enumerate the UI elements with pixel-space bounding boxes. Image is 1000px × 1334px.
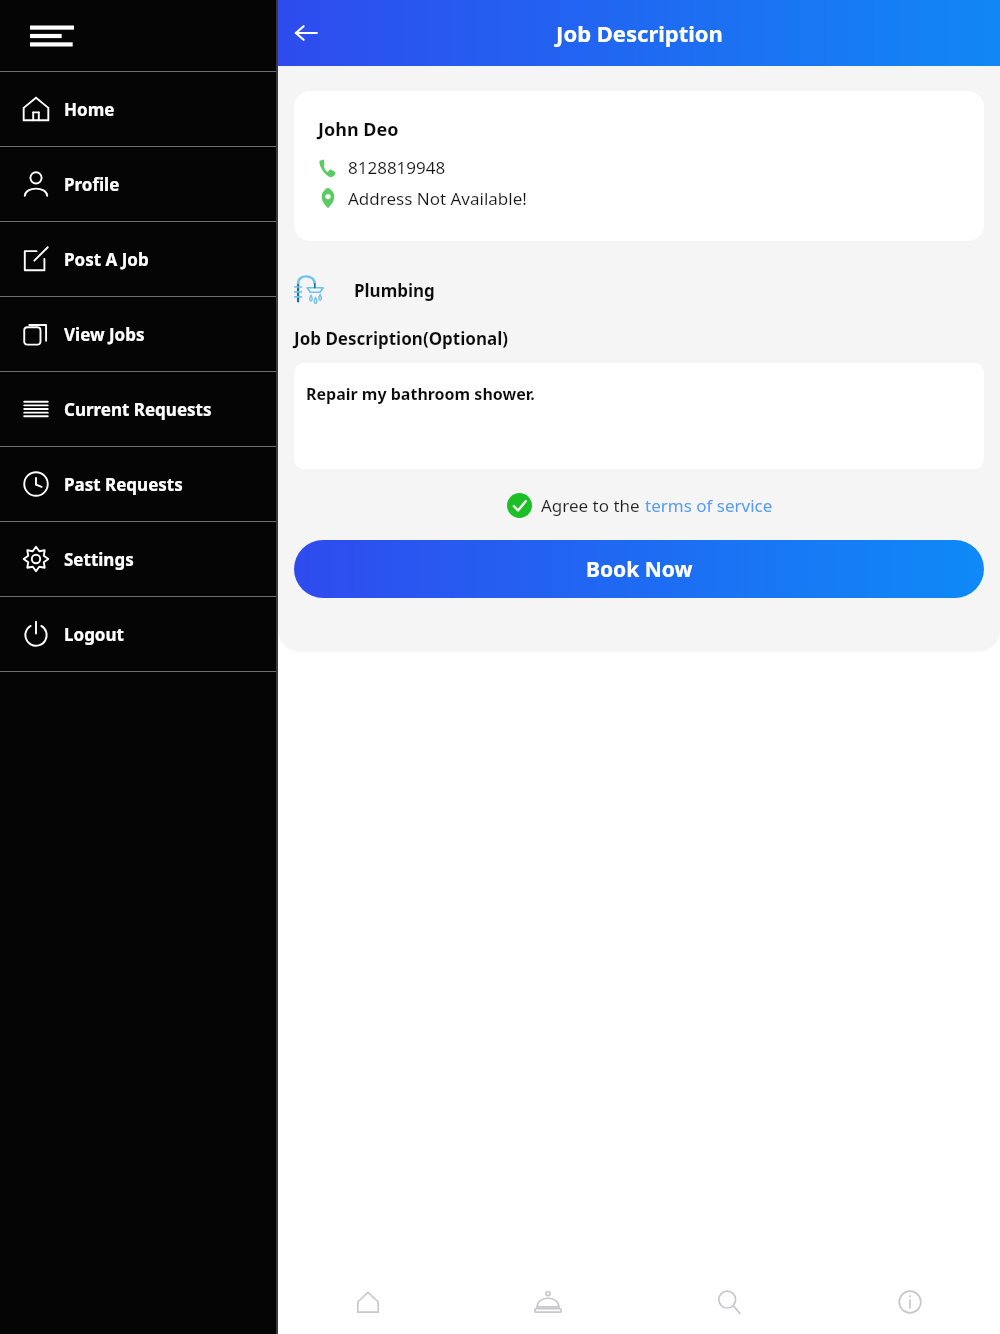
- staticText: Job Description(Optional): [294, 327, 508, 350]
- button[interactable]: Repair my bathroom shower.: [294, 363, 984, 469]
- staticText: Plumbing: [354, 279, 435, 302]
- button[interactable]: Profile: [0, 147, 278, 221]
- button[interactable]: Home: [278, 1270, 458, 1334]
- button[interactable]: View Jobs: [0, 297, 278, 371]
- button[interactable]: Agree checkbox: [505, 491, 533, 519]
- staticText: Book Now: [586, 555, 693, 584]
- button[interactable]: Services: [458, 1270, 638, 1334]
- button[interactable]: Post A Job: [0, 222, 278, 296]
- staticText: Profile: [64, 173, 120, 196]
- staticText: Agree to the: [541, 494, 645, 517]
- button[interactable]: Home: [0, 72, 278, 146]
- staticText: terms of service: [645, 494, 773, 517]
- button[interactable]: Back: [282, 9, 330, 57]
- button[interactable]: John Deo: [294, 91, 984, 241]
- button[interactable]: Settings: [0, 522, 278, 596]
- staticText: Settings: [64, 548, 134, 571]
- staticText: View Jobs: [64, 323, 145, 346]
- button[interactable]: Current Requests: [0, 372, 278, 446]
- staticText: Past Requests: [64, 473, 183, 496]
- button[interactable]: terms of service: [645, 494, 773, 517]
- staticText: John Deo: [318, 117, 399, 142]
- button[interactable]: Past Requests: [0, 447, 278, 521]
- button[interactable]: Menu: [0, 0, 278, 71]
- staticText: 8128819948: [348, 156, 446, 179]
- staticText: Address Not Available!: [348, 187, 527, 210]
- button[interactable]: Info: [819, 1270, 1000, 1334]
- button[interactable]: Logout: [0, 597, 278, 671]
- staticText: Repair my bathroom shower.: [306, 383, 535, 405]
- button[interactable]: Book Now: [294, 540, 984, 598]
- staticText: Post A Job: [64, 248, 149, 271]
- staticText: Current Requests: [64, 398, 212, 421]
- staticText: Home: [64, 98, 115, 121]
- button[interactable]: Search: [638, 1270, 819, 1334]
- staticText: Job Description: [556, 18, 723, 48]
- staticText: Logout: [64, 623, 124, 646]
